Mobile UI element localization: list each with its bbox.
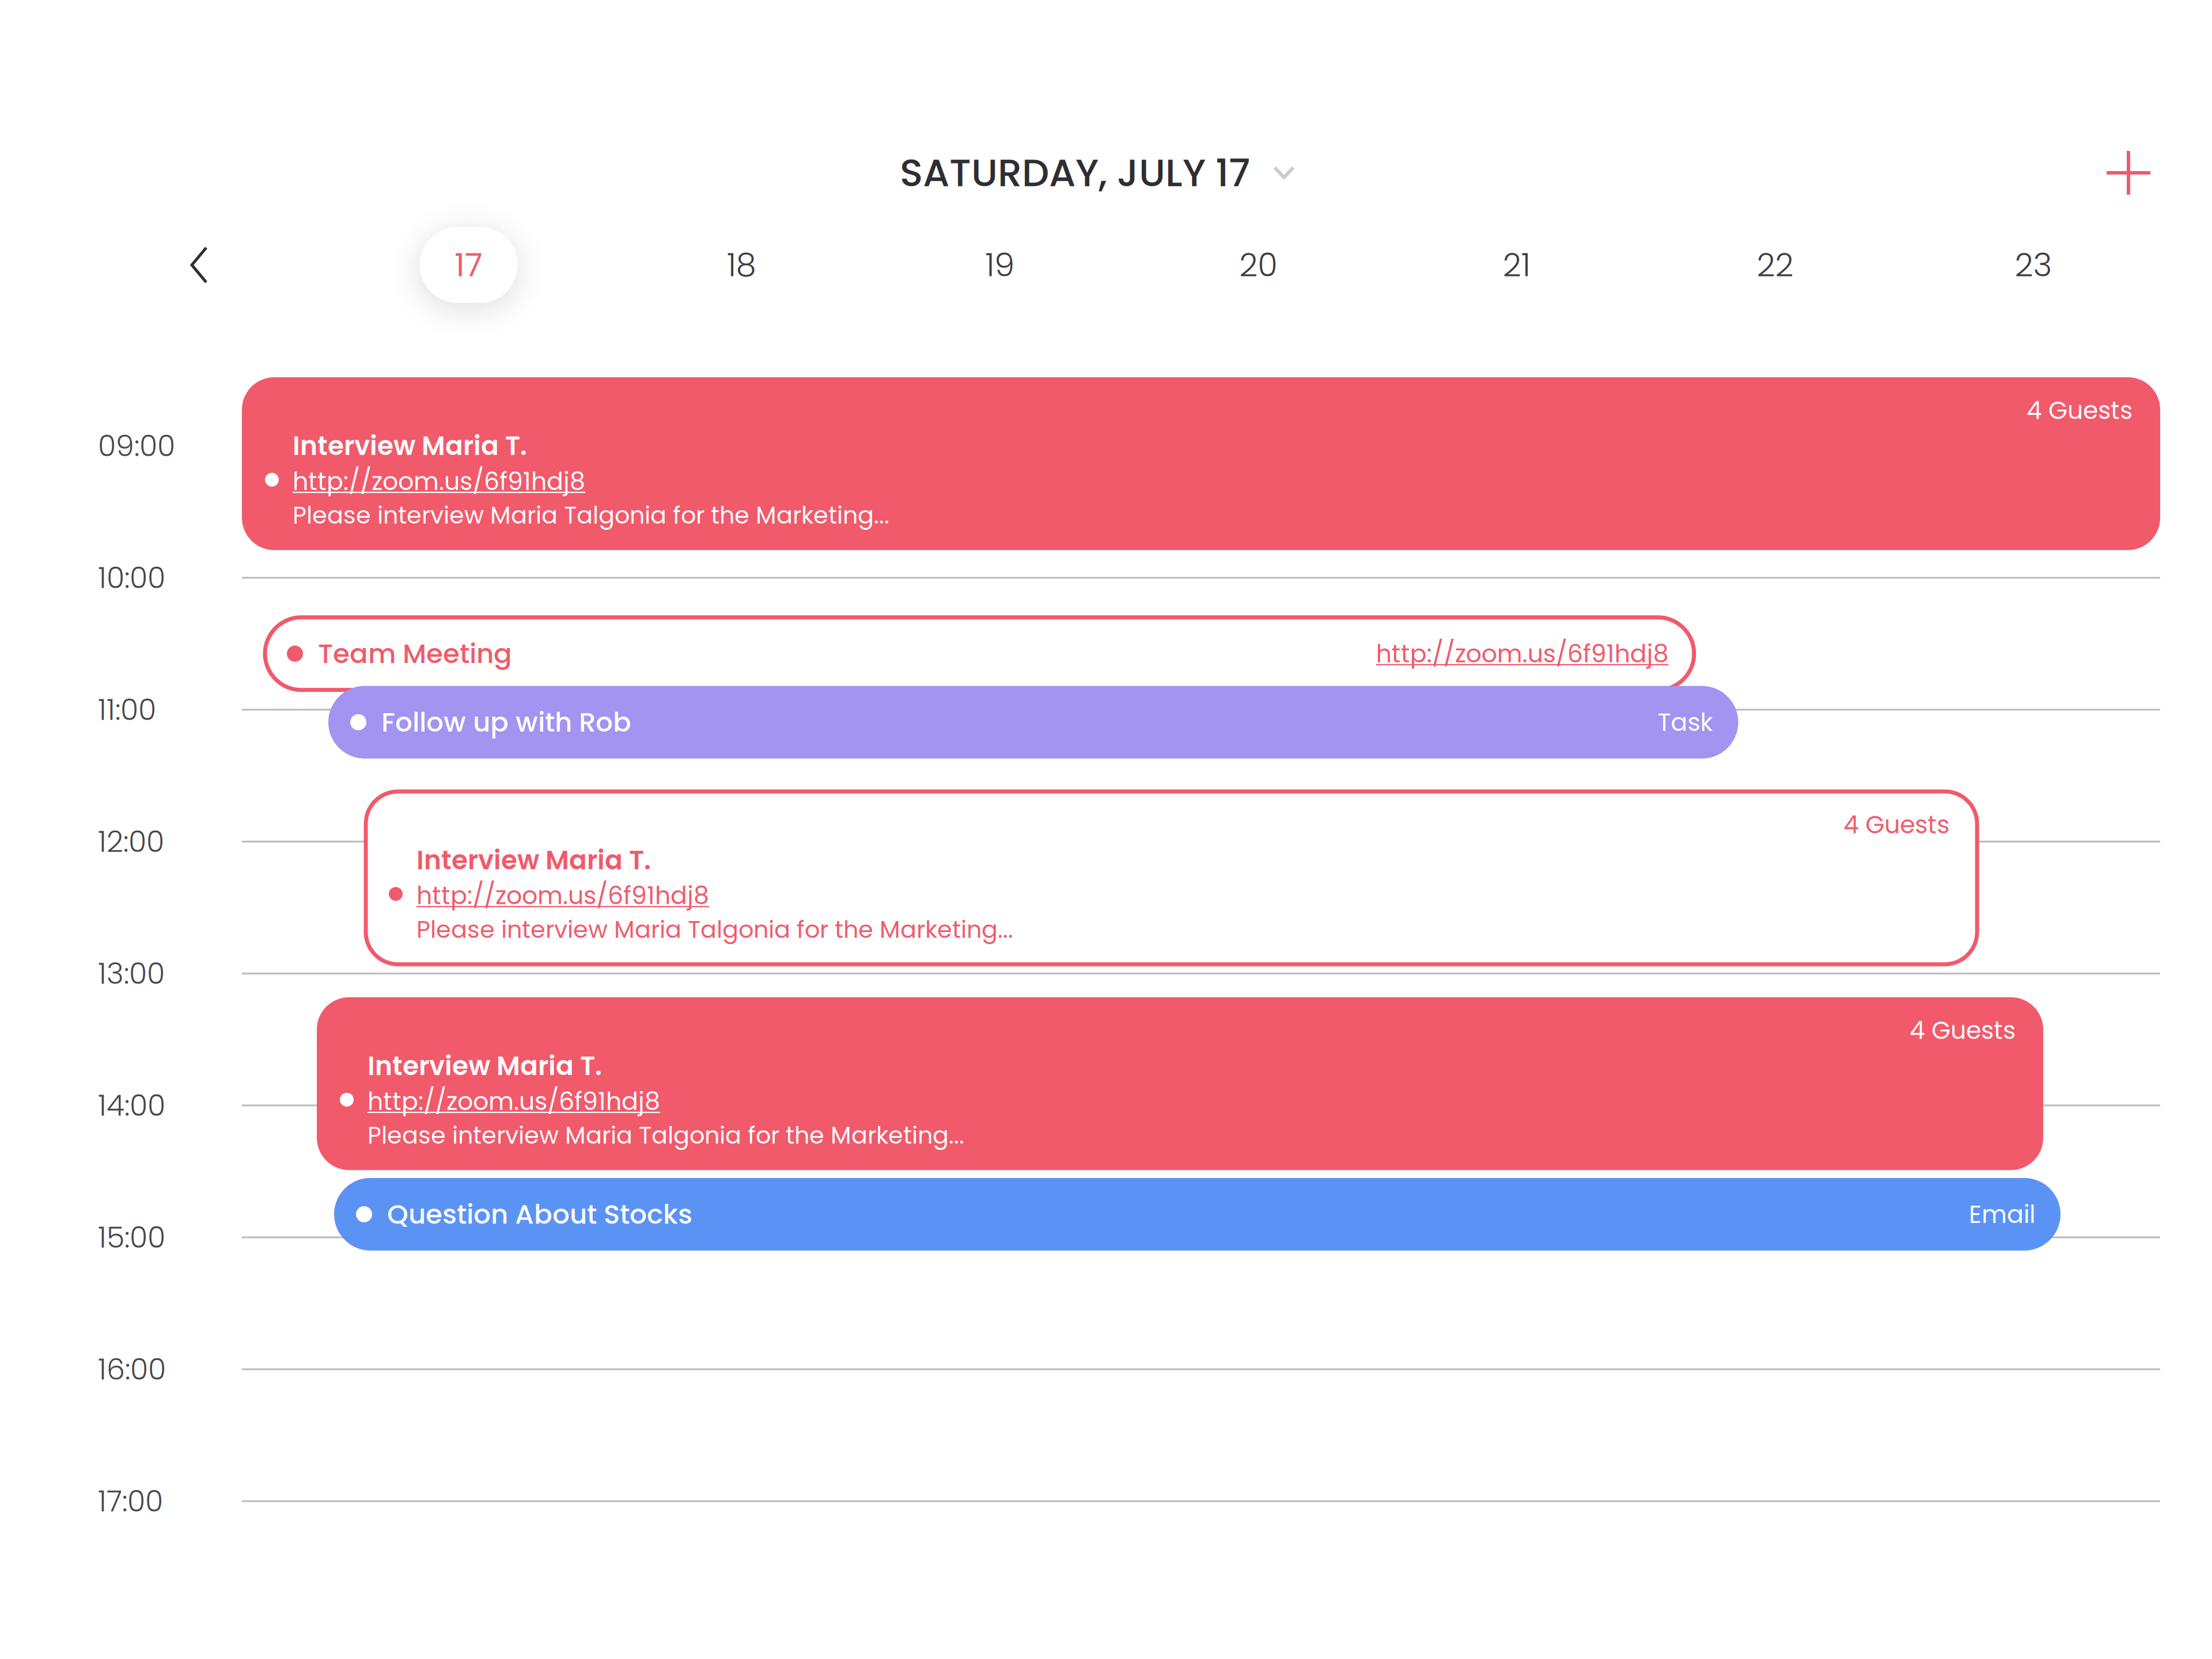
staticText: Please interview Maria Talgonia for the … (293, 499, 889, 532)
staticText: Interview Maria T. (368, 1048, 602, 1084)
staticText: http://zoom.us/6f91hdj8 (416, 878, 709, 913)
button[interactable]: 17 (420, 227, 518, 303)
staticText: 20 (1239, 242, 1277, 288)
button[interactable]: 18 (707, 230, 776, 300)
button[interactable]: 4 Guests (242, 377, 2160, 550)
button[interactable]: 4 Guests (317, 997, 2043, 1170)
staticText: 10:00 (98, 557, 165, 598)
staticText: 23 (2015, 242, 2052, 288)
button[interactable]: 4 Guests (366, 791, 1977, 964)
staticText: 12:00 (98, 821, 164, 862)
staticText: Team Meeting (318, 635, 512, 672)
button[interactable]: Add event (2097, 141, 2160, 204)
staticText: Please interview Maria Talgonia for the … (416, 913, 1013, 946)
staticText: Interview Maria T. (293, 428, 527, 464)
staticText: 4 Guests (2027, 393, 2133, 428)
staticText: Task (1658, 705, 1713, 739)
button[interactable]: Previous day (167, 230, 230, 300)
staticText: 21 (1503, 242, 1530, 288)
button[interactable]: Question About Stocks (334, 1178, 2061, 1251)
staticText: http://zoom.us/6f91hdj8 (1376, 636, 1669, 671)
staticText: 18 (727, 242, 756, 288)
staticText: 13:00 (98, 953, 165, 994)
staticText: Email (1969, 1197, 2035, 1231)
staticText: Follow up with Rob (381, 703, 631, 741)
staticText: Please interview Maria Talgonia for the … (368, 1119, 964, 1152)
staticText: Question About Stocks (387, 1195, 692, 1233)
button[interactable]: Follow up with Rob (328, 686, 1738, 759)
staticText: 22 (1757, 242, 1793, 288)
button[interactable]: Team Meeting (265, 617, 1694, 690)
button[interactable]: 19 (965, 230, 1034, 300)
staticText: http://zoom.us/6f91hdj8 (368, 1084, 660, 1119)
staticText: 19 (985, 242, 1015, 288)
button[interactable]: 20 (1224, 230, 1293, 300)
button[interactable]: 22 (1740, 230, 1810, 300)
button[interactable]: 23 (1999, 230, 2068, 300)
staticText: 17:00 (98, 1481, 163, 1522)
staticText: 4 Guests (1843, 807, 1949, 842)
staticText: 4 Guests (1910, 1013, 2016, 1048)
staticText: 16:00 (98, 1349, 166, 1390)
staticText: Interview Maria T. (416, 842, 651, 878)
staticText: 11:00 (98, 689, 156, 730)
staticText: 14:00 (98, 1085, 165, 1126)
staticText: SATURDAY, JULY 17 (900, 146, 1250, 200)
staticText: 09:00 (98, 425, 175, 466)
staticText: 15:00 (98, 1217, 165, 1258)
button[interactable]: 21 (1482, 230, 1551, 300)
staticText: http://zoom.us/6f91hdj8 (293, 464, 585, 499)
staticText: 17 (455, 242, 483, 288)
